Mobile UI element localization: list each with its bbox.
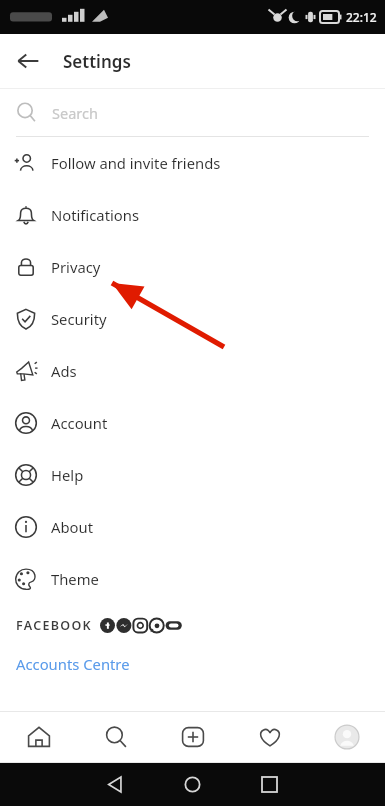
staticText: 22:12 (346, 9, 377, 25)
button[interactable]: Create (154, 712, 231, 762)
button[interactable]: Back (8, 41, 48, 81)
staticText: Notifications (51, 205, 140, 225)
button[interactable]: Back (77, 763, 154, 806)
button[interactable]: About (0, 501, 385, 553)
button[interactable]: Home (0, 712, 77, 762)
button[interactable]: Activity (231, 712, 308, 762)
button[interactable]: Home (154, 763, 231, 806)
staticText: FACEBOOK (16, 617, 92, 634)
button[interactable]: Follow and invite friends (0, 137, 385, 189)
button[interactable]: Ads (0, 345, 385, 397)
staticText: Help (51, 465, 84, 485)
button[interactable]: Profile (308, 712, 385, 762)
staticText: Settings (63, 50, 131, 73)
button[interactable]: Accounts Centre (0, 645, 385, 683)
button[interactable]: Search (0, 89, 385, 136)
button[interactable]: Search (77, 712, 154, 762)
staticText: Privacy (51, 257, 101, 277)
button[interactable]: Theme (0, 553, 385, 605)
staticText: Ads (51, 361, 77, 381)
staticText: About (51, 517, 93, 537)
staticText: Security (51, 309, 107, 329)
button[interactable]: Recents (231, 763, 308, 806)
staticText: Accounts Centre (16, 654, 130, 674)
button[interactable]: Account (0, 397, 385, 449)
staticText: Theme (51, 569, 99, 589)
button[interactable]: Notifications (0, 189, 385, 241)
button[interactable]: Security (0, 293, 385, 345)
staticText: Follow and invite friends (51, 153, 221, 173)
staticText: Search (52, 103, 98, 123)
staticText: Account (51, 413, 108, 433)
button[interactable]: Help (0, 449, 385, 501)
button[interactable]: Privacy (0, 241, 385, 293)
